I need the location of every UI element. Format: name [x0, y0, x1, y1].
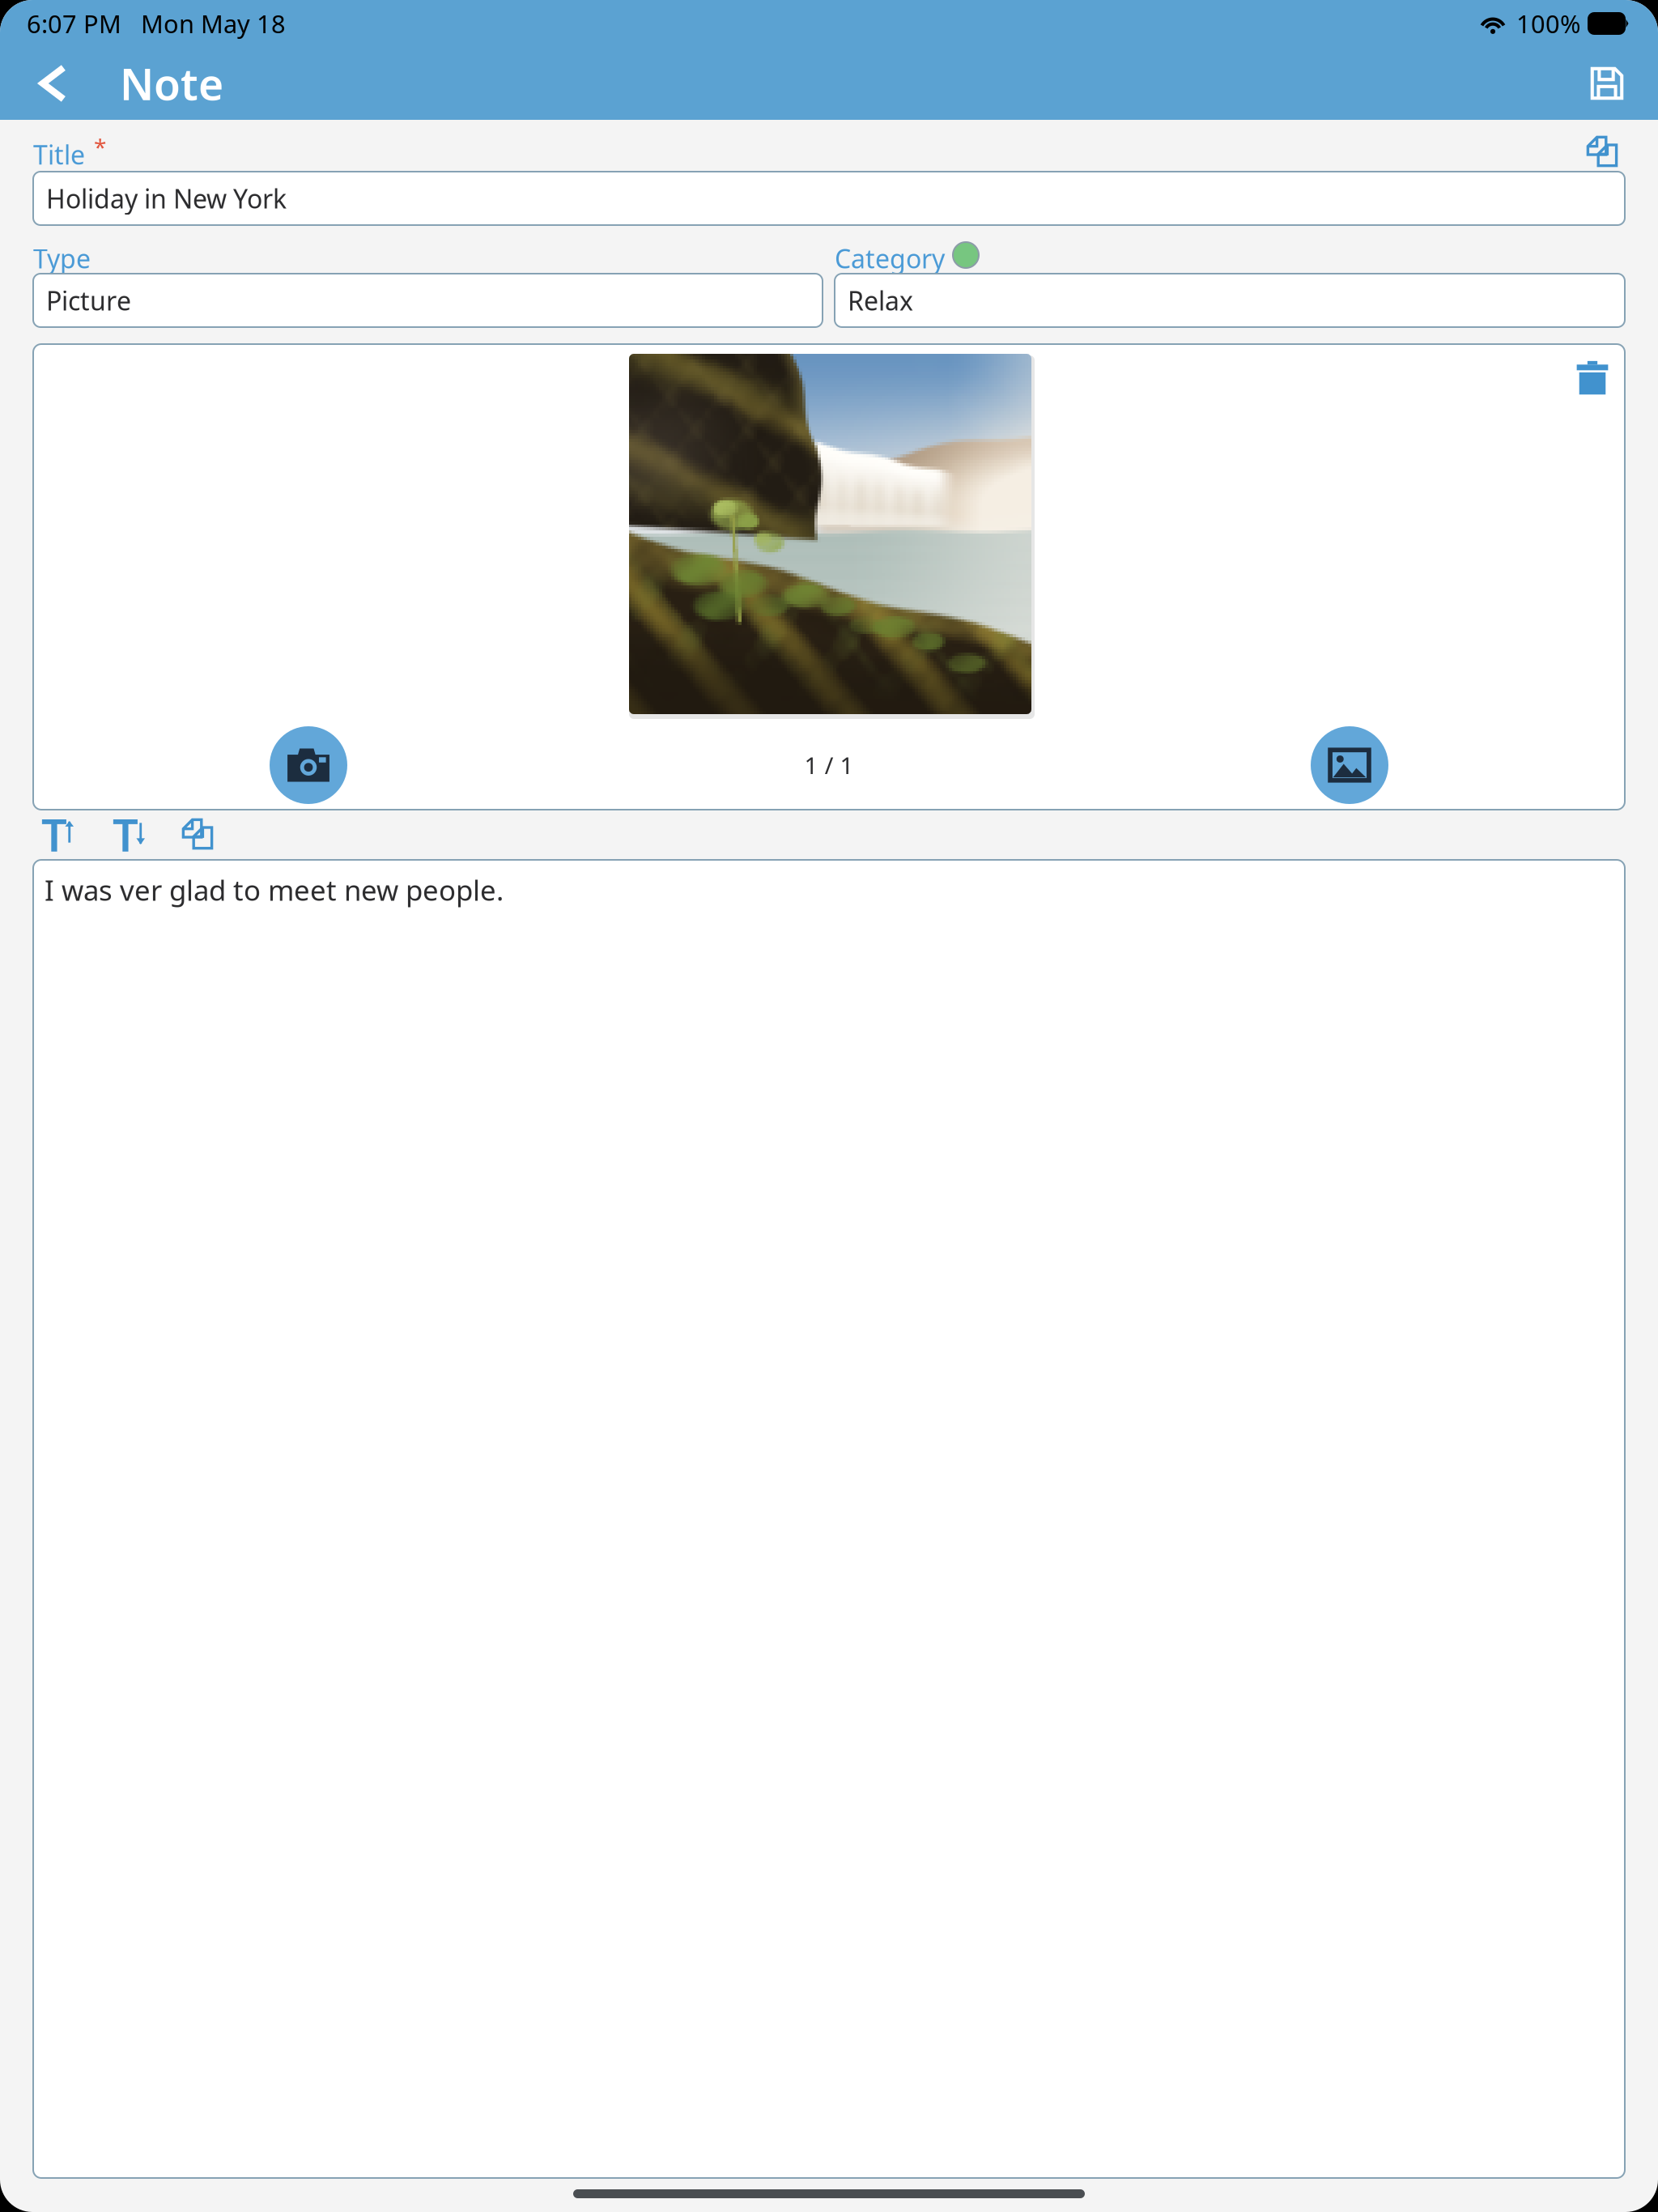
button[interactable]: Decrease text size: [100, 814, 161, 854]
staticText: I was ver glad to meet new people.: [45, 871, 504, 908]
staticText: T: [41, 804, 67, 864]
staticText: Type: [33, 241, 91, 276]
staticText: Relax: [848, 283, 913, 318]
staticText: *: [94, 132, 106, 162]
staticText: Picture: [46, 283, 131, 318]
button[interactable]: Choose photo from library: [1311, 726, 1388, 804]
staticText: Mon May 18: [141, 7, 286, 40]
staticText: Note: [120, 55, 223, 112]
button[interactable]: Duplicate note: [1579, 131, 1625, 172]
staticText: 6:07 PM: [27, 7, 121, 40]
button[interactable]: Delete photo: [1563, 349, 1622, 407]
button[interactable]: Back: [16, 47, 91, 120]
button[interactable]: Take photo: [270, 726, 347, 804]
button[interactable]: Increase text size: [28, 814, 90, 854]
button[interactable]: Save: [1572, 49, 1642, 118]
staticText: Category: [835, 241, 945, 276]
staticText: 1 / 1: [804, 749, 854, 781]
button[interactable]: Copy text: [172, 814, 223, 854]
staticText: 100%: [1516, 7, 1580, 40]
staticText: Holiday in New York: [46, 181, 287, 216]
staticText: Title: [33, 137, 85, 172]
staticText: T: [113, 804, 139, 864]
